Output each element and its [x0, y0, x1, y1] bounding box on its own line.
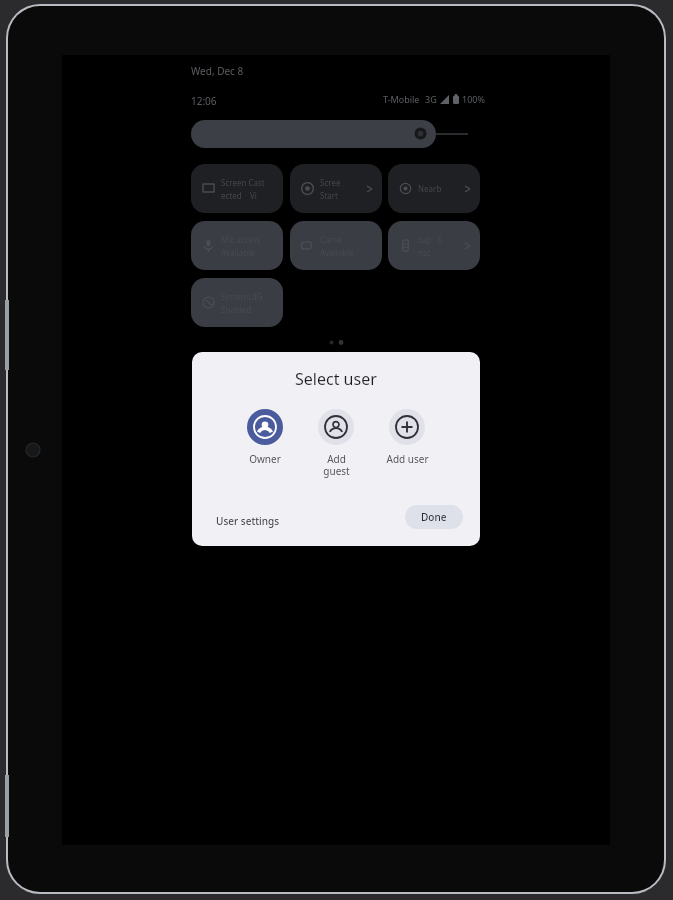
staticText: SystemUIGX	[221, 291, 267, 302]
staticText: Mic access	[221, 234, 261, 245]
staticText: T-Mobile	[383, 93, 420, 105]
button[interactable]: Nearb	[388, 164, 480, 213]
button[interactable]: Add user	[379, 409, 435, 466]
button[interactable]: Done	[405, 505, 463, 529]
staticText: 100%	[462, 93, 485, 105]
staticText: Owner	[249, 452, 281, 466]
staticText: Done	[421, 510, 447, 524]
button[interactable]: Came	[290, 221, 382, 270]
button[interactable]: Mic access	[191, 221, 283, 270]
staticText: ected Vi	[221, 190, 257, 201]
staticText: Add guest	[323, 452, 350, 478]
staticText: Select user	[295, 368, 377, 390]
staticText: Start	[320, 190, 338, 201]
staticText: 3G	[425, 93, 437, 105]
button[interactable]: SystemUIGX	[191, 278, 283, 327]
staticText: Came	[320, 234, 342, 245]
staticText: Scree	[320, 177, 341, 188]
staticText: User settings	[216, 514, 280, 528]
staticText: Nearb	[418, 183, 442, 194]
button[interactable]: User settings	[206, 508, 290, 534]
staticText: Wed, Dec 8	[191, 64, 244, 78]
staticText: Available	[221, 247, 255, 258]
staticText: Available	[320, 247, 354, 258]
staticText: Add user	[386, 452, 429, 466]
button[interactable]: Scree	[290, 164, 382, 213]
staticText: 12:06	[191, 94, 217, 108]
staticText: Enabled	[221, 304, 252, 315]
button[interactable]: Owner	[237, 409, 293, 466]
other: Brightness	[414, 127, 427, 140]
staticText: cap 6	[418, 234, 443, 245]
staticText: Screen Cast	[221, 177, 265, 188]
button[interactable]	[191, 120, 436, 148]
button[interactable]: Screen Cast	[191, 164, 283, 213]
button[interactable]: cap 6	[388, 221, 480, 270]
button[interactable]: Add guest	[308, 409, 364, 478]
staticText: nsc	[418, 247, 431, 258]
